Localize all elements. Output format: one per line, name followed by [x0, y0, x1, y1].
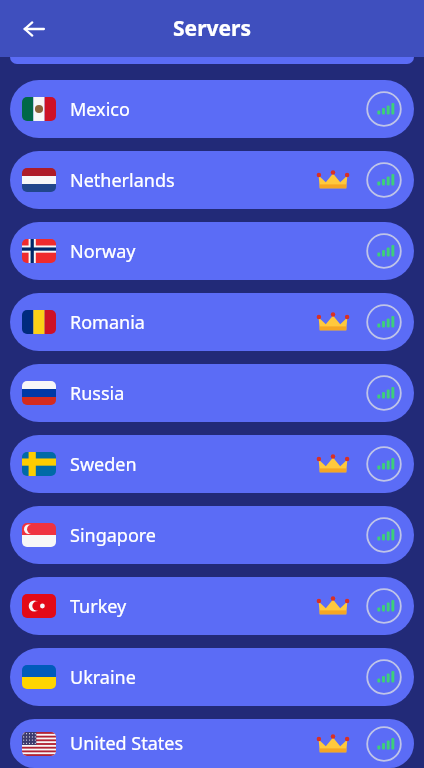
staticText: United States [70, 731, 184, 756]
button[interactable] [10, 57, 414, 64]
staticText: Netherlands [70, 168, 175, 193]
other: Signal strength [366, 517, 402, 553]
button[interactable]: United States [10, 719, 414, 768]
other: Premium [318, 595, 348, 617]
other: Signal strength [366, 726, 402, 762]
other: Signal strength [366, 588, 402, 624]
button[interactable]: Norway [10, 222, 414, 280]
staticText: Singapore [70, 523, 157, 548]
staticText: Ukraine [70, 665, 136, 690]
other: Signal strength [366, 659, 402, 695]
other: Premium [318, 169, 348, 191]
staticText: Sweden [70, 452, 137, 477]
button[interactable]: Romania [10, 293, 414, 351]
staticText: Romania [70, 310, 145, 335]
staticText: Turkey [70, 594, 127, 619]
other: Signal strength [366, 375, 402, 411]
other: Signal strength [366, 162, 402, 198]
staticText: Norway [70, 239, 136, 264]
staticText: Mexico [70, 97, 130, 122]
staticText: Servers [173, 14, 251, 43]
other: Signal strength [366, 233, 402, 269]
button[interactable]: Turkey [10, 577, 414, 635]
button[interactable]: Ukraine [10, 648, 414, 706]
button[interactable]: Back [12, 7, 56, 51]
other: Premium [318, 311, 348, 333]
button[interactable]: Mexico [10, 80, 414, 138]
other: Premium [318, 453, 348, 475]
button[interactable]: Singapore [10, 506, 414, 564]
other: Signal strength [366, 91, 402, 127]
button[interactable]: Sweden [10, 435, 414, 493]
other: Signal strength [366, 446, 402, 482]
other: Signal strength [366, 304, 402, 340]
staticText: Russia [70, 381, 125, 406]
button[interactable]: Russia [10, 364, 414, 422]
other: Premium [318, 733, 348, 755]
button[interactable]: Netherlands [10, 151, 414, 209]
